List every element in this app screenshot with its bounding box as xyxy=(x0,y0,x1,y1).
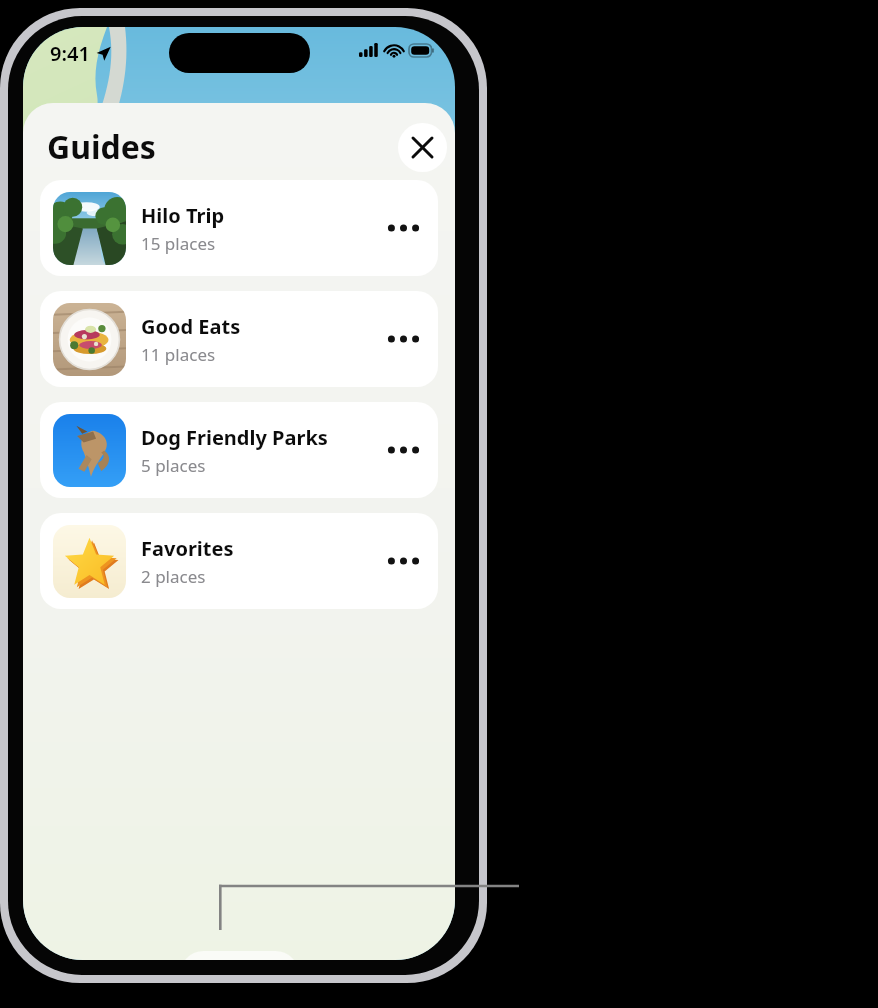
button[interactable]: More options xyxy=(380,205,426,251)
button[interactable]: Hilo Trip xyxy=(40,180,438,276)
staticText: 9:41 xyxy=(50,40,90,67)
staticText: Favorites xyxy=(141,535,234,562)
button[interactable]: Good Eats xyxy=(40,291,438,387)
staticText: Hilo Trip xyxy=(141,202,225,229)
button[interactable]: Favorites xyxy=(40,513,438,609)
staticText: 5 places xyxy=(141,454,206,477)
staticText: Guides xyxy=(47,125,156,169)
button[interactable]: More options xyxy=(380,538,426,584)
staticText: 15 places xyxy=(141,232,216,255)
button[interactable]: Close xyxy=(398,123,447,172)
staticText: Good Eats xyxy=(141,313,241,340)
button[interactable]: More options xyxy=(380,316,426,362)
staticText: Dog Friendly Parks xyxy=(141,424,328,451)
staticText: 2 places xyxy=(141,565,206,588)
button[interactable]: Add guide xyxy=(180,951,239,960)
button[interactable]: Browse guides xyxy=(239,951,299,960)
staticText: 11 places xyxy=(141,343,216,366)
button[interactable]: More options xyxy=(380,427,426,473)
button[interactable]: Dog Friendly Parks xyxy=(40,402,438,498)
